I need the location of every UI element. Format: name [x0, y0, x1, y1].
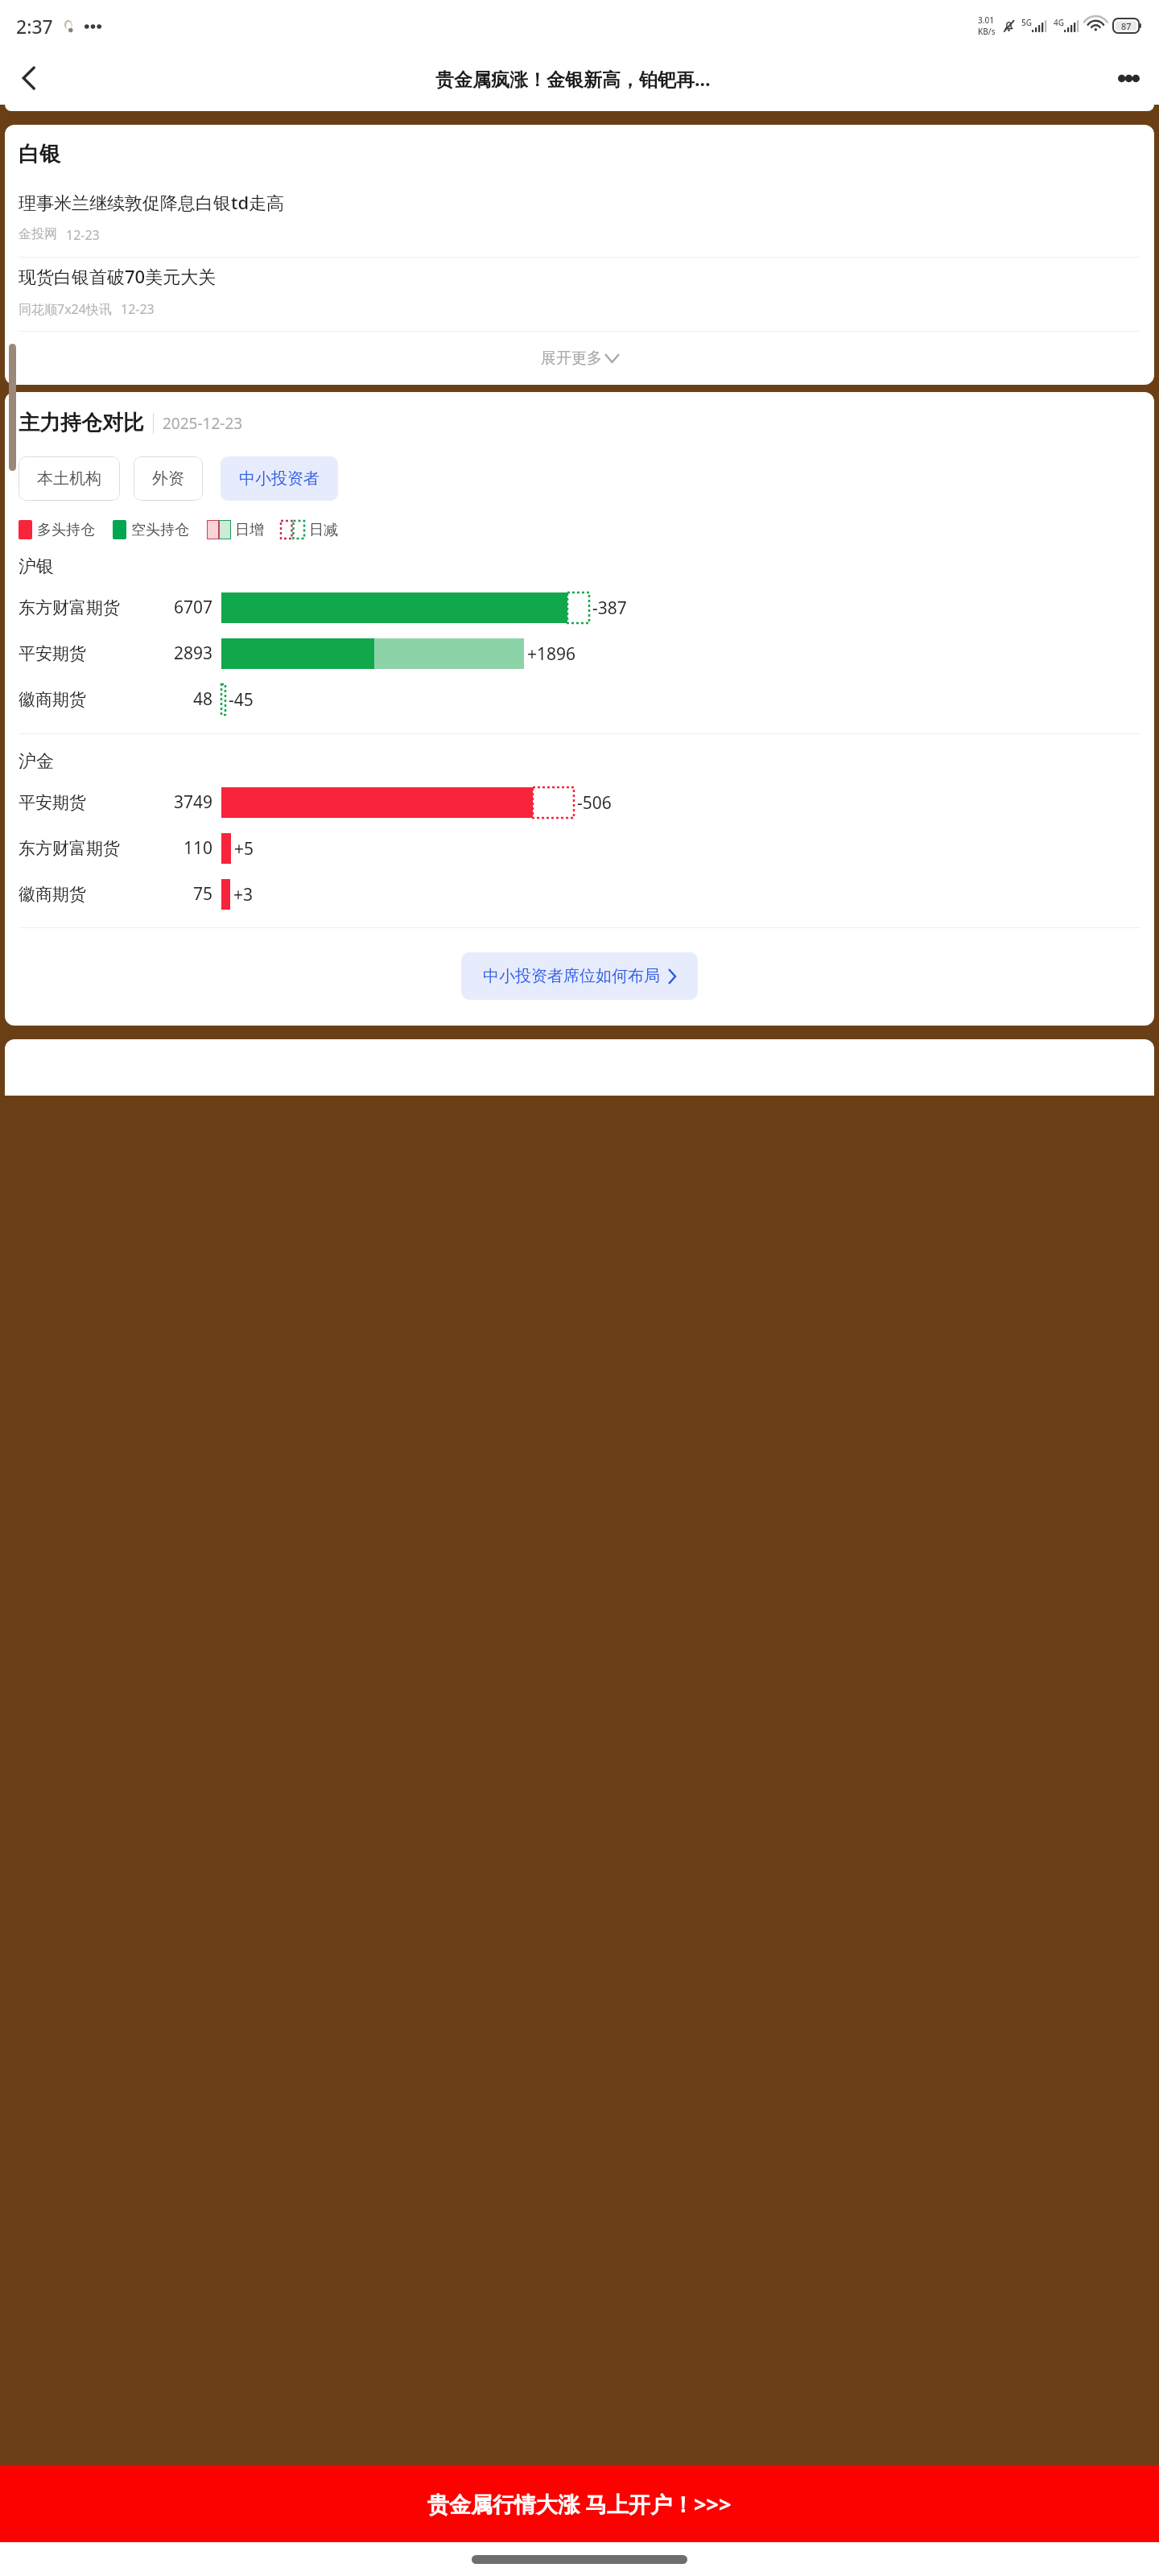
staticText: 沪银: [19, 555, 54, 578]
staticText: KB/s: [978, 26, 996, 37]
staticText: 48: [193, 687, 213, 711]
staticText: 平安期货: [19, 792, 86, 813]
button[interactable]: Back: [8, 57, 50, 99]
staticText: 平安期货: [19, 643, 86, 664]
staticText: 5G: [1021, 17, 1032, 28]
staticText: 12-23: [66, 226, 100, 244]
staticText: 展开更多: [541, 349, 602, 368]
staticText: 东方财富期货: [19, 597, 120, 618]
staticText: 沪金: [19, 750, 54, 773]
button[interactable]: 现货白银首破70美元大关: [19, 258, 1140, 331]
staticText: 空头持仓: [131, 521, 189, 539]
button[interactable]: 展开更多: [19, 332, 1140, 385]
staticText: 外资: [152, 469, 184, 489]
staticText: 徽商期货: [19, 884, 86, 905]
staticText: 东方财富期货: [19, 838, 120, 859]
staticText: 3749: [174, 791, 213, 814]
staticText: +3: [233, 883, 254, 906]
staticText: 贵金属行情大涨 马上开户！>>>: [427, 2489, 732, 2519]
button[interactable]: 贵金属行情大涨 马上开户！>>>: [0, 2465, 1159, 2542]
staticText: 主力持仓对比: [19, 410, 144, 436]
button[interactable]: More options: [1107, 57, 1149, 99]
staticText: 现货白银首破70美元大关: [19, 264, 217, 288]
staticText: +1896: [527, 642, 576, 666]
staticText: 白银: [19, 141, 60, 167]
button[interactable]: 本土机构: [19, 456, 120, 501]
staticText: 3.01: [978, 14, 994, 26]
other: Silent mode: [1002, 19, 1016, 33]
staticText: 多头持仓: [37, 521, 95, 539]
button[interactable]: 理事米兰继续敦促降息白银td走高: [19, 184, 1140, 257]
staticText: 日减: [309, 521, 338, 539]
staticText: 2:37: [16, 14, 53, 39]
other: Wi-Fi: [1087, 19, 1105, 33]
staticText: -45: [229, 688, 254, 712]
button[interactable]: 外资: [134, 456, 203, 501]
staticText: 日增: [235, 521, 264, 539]
staticText: 2893: [174, 642, 213, 665]
staticText: 4G: [1054, 17, 1064, 28]
staticText: 本土机构: [37, 469, 101, 489]
staticText: 同花顺7x24快讯: [19, 300, 112, 318]
staticText: -506: [577, 791, 612, 815]
staticText: 2025-12-23: [163, 413, 243, 434]
staticText: 110: [184, 836, 213, 860]
staticText: +5: [234, 837, 254, 861]
staticText: 75: [193, 882, 213, 906]
button[interactable]: 中小投资者席位如何布局: [461, 952, 698, 1000]
staticText: 6707: [174, 596, 213, 619]
staticText: -387: [592, 597, 627, 620]
button[interactable]: 中小投资者: [221, 456, 338, 501]
staticText: 87: [1121, 20, 1132, 32]
staticText: 理事米兰继续敦促降息白银td走高: [19, 190, 285, 214]
staticText: 贵金属疯涨！金银新高，铂钯再…: [435, 66, 711, 91]
staticText: 中小投资者席位如何布局: [483, 966, 660, 986]
staticText: 徽商期货: [19, 689, 86, 710]
staticText: 金投网: [19, 226, 57, 242]
staticText: 中小投资者: [239, 469, 320, 489]
staticText: 12-23: [121, 300, 155, 318]
